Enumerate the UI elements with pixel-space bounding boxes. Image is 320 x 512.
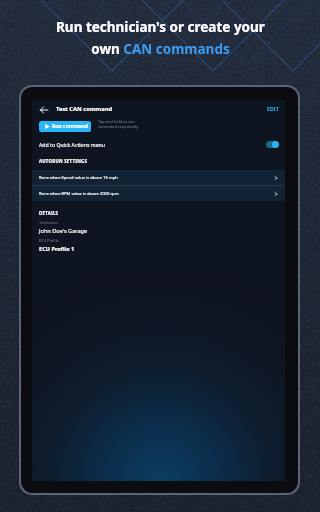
button[interactable]: Runs when Speed value is above 15 mph (32, 170, 285, 185)
staticText: Add to Quick Actions menu (39, 141, 105, 148)
button[interactable]: Back (38, 104, 49, 115)
staticText: own CAN commands (91, 40, 230, 58)
staticText: Runs when Speed value is above 15 mph (39, 175, 118, 181)
button[interactable]: Run command (39, 121, 91, 132)
staticText: ECU Profile 1 (39, 245, 75, 253)
staticText: John Doe's Garage (39, 227, 88, 235)
staticText: Test CAN command (56, 105, 113, 113)
staticText: Tap and hold to run command repeatedly (98, 119, 139, 129)
staticText: AUTORUN SETTINGS (39, 158, 88, 164)
staticText: DETAILS (39, 210, 59, 216)
button[interactable]: Add to Quick Actions menu (32, 139, 285, 150)
staticText: Run command (52, 123, 88, 130)
staticText: ECU Profile (39, 238, 59, 243)
button[interactable]: Runs when RPM value is above 2000 rpm (32, 186, 285, 201)
staticText: EDIT (267, 106, 280, 113)
staticText: Runs when RPM value is above 2000 rpm (39, 191, 119, 197)
staticText: Run technician's or create your (56, 18, 265, 36)
staticText: Technician (39, 220, 58, 225)
button[interactable]: EDIT (266, 104, 281, 115)
